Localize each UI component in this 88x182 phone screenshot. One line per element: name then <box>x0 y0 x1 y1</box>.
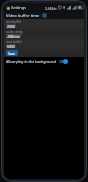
button[interactable]: max buffer <box>4 39 84 49</box>
staticText: audio delay <box>6 30 23 34</box>
button[interactable]: Allow play in the background <box>4 57 84 66</box>
staticText: Settings <box>11 5 27 10</box>
staticText: 2500 <box>7 24 15 28</box>
button[interactable]: Save <box>6 50 18 56</box>
staticText: max buffer <box>6 40 23 44</box>
button[interactable]: audio delay <box>4 29 84 39</box>
staticText: Save <box>8 51 16 55</box>
staticText: 5000 <box>7 44 15 48</box>
button[interactable]: Allow play in the background <box>59 59 68 64</box>
button[interactable]: Info <box>42 13 47 18</box>
button[interactable]: min buffer <box>4 19 84 29</box>
staticText: min buffer <box>6 20 22 24</box>
staticText: Allow play in the background <box>6 59 57 64</box>
staticText: Video buffer time <box>6 13 40 18</box>
staticText: 2.6Kb/s <box>45 6 57 10</box>
staticText: -500 ms <box>7 34 20 38</box>
